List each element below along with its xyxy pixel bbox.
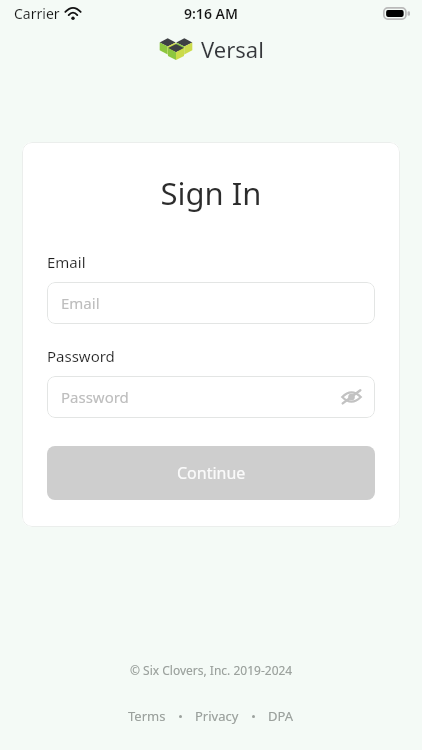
button[interactable]: Continue [47, 446, 375, 500]
staticText: Continue [177, 462, 246, 484]
staticText: Password [61, 387, 129, 407]
staticText: 9:16 AM [184, 4, 238, 23]
staticText: Privacy [195, 707, 239, 725]
staticText: Terms [128, 707, 166, 725]
staticText: Carrier [14, 4, 60, 23]
staticText: Email [61, 293, 100, 313]
staticText: DPA [268, 707, 294, 725]
button[interactable]: Email [47, 282, 375, 324]
staticText: © Six Clovers, Inc. 2019-2024 [130, 662, 293, 678]
button[interactable]: Password [47, 376, 375, 418]
staticText: Email [47, 252, 86, 272]
staticText: Password [47, 346, 115, 366]
button[interactable]: Terms [122, 704, 172, 728]
button[interactable]: DPA [262, 704, 300, 728]
button[interactable]: Show password [338, 384, 364, 410]
staticText: Versal [201, 34, 264, 64]
button[interactable]: Privacy [189, 704, 245, 728]
staticText: Sign In [47, 172, 375, 214]
